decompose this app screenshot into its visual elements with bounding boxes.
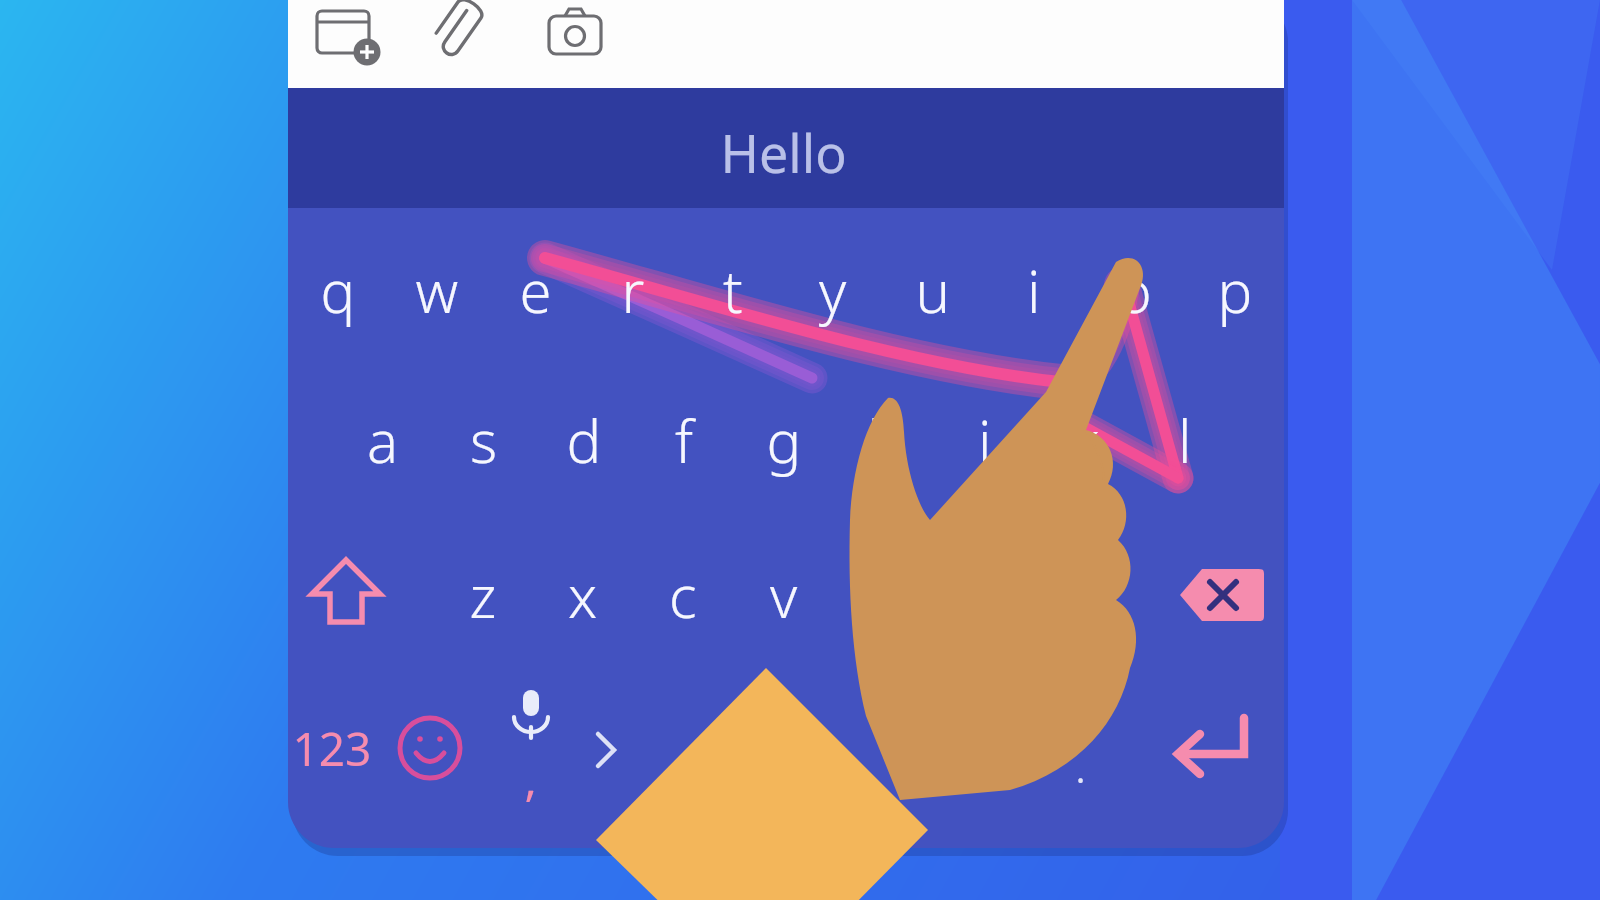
button[interactable]: Keyboard swipe typing demo: [0, 0, 1600, 900]
